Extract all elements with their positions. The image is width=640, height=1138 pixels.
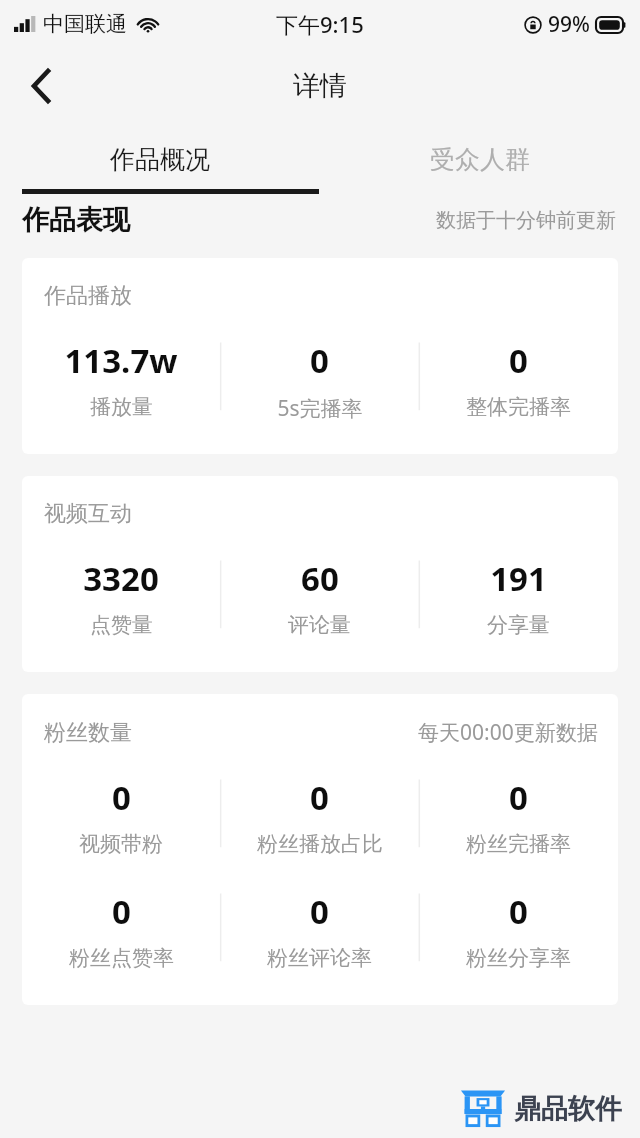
button[interactable]: 受众人群 — [320, 124, 640, 194]
button[interactable]: 作品播放 — [22, 258, 618, 454]
staticText: 作品播放 — [44, 282, 132, 310]
staticText: 3320 — [83, 556, 159, 601]
staticText: 下午9:15 — [276, 9, 364, 39]
staticText: 粉丝评论率 — [267, 945, 372, 971]
button[interactable]: Back — [12, 57, 70, 115]
staticText: 播放量 — [90, 394, 153, 420]
button[interactable]: 粉丝数量 — [22, 694, 618, 1005]
staticText: 0 — [112, 775, 131, 820]
staticText: 分享量 — [487, 612, 550, 638]
staticText: 99% — [548, 10, 590, 39]
staticText: 作品概况 — [110, 144, 210, 175]
staticText: 5s完播率 — [277, 394, 363, 423]
staticText: 点赞量 — [90, 612, 153, 638]
staticText: 60 — [301, 556, 339, 601]
staticText: 粉丝分享率 — [466, 945, 571, 971]
staticText: 视频带粉 — [79, 831, 163, 857]
staticText: 191 — [490, 556, 547, 601]
staticText: 粉丝数量 — [44, 719, 132, 747]
staticText: 每天00:00更新数据 — [418, 718, 598, 747]
button[interactable]: 视频互动 — [22, 476, 618, 672]
staticText: 0 — [509, 775, 528, 820]
staticText: 详情 — [293, 69, 347, 103]
staticText: 0 — [310, 338, 329, 383]
staticText: 整体完播率 — [466, 394, 571, 420]
staticText: 作品表现 — [22, 203, 130, 237]
staticText: 中国联通 — [43, 11, 127, 37]
staticText: 113.7w — [64, 338, 178, 383]
staticText: 0 — [310, 889, 329, 934]
staticText: 粉丝播放占比 — [257, 831, 383, 857]
staticText: 0 — [112, 889, 131, 934]
staticText: 0 — [509, 889, 528, 934]
staticText: 粉丝点赞率 — [69, 945, 174, 971]
staticText: 受众人群 — [430, 144, 530, 175]
staticText: 粉丝完播率 — [466, 831, 571, 857]
staticText: 数据于十分钟前更新 — [436, 208, 616, 233]
staticText: 鼎品软件 — [514, 1092, 622, 1126]
button[interactable]: 作品概况 — [0, 124, 320, 194]
staticText: 0 — [509, 338, 528, 383]
staticText: 0 — [310, 775, 329, 820]
staticText: 视频互动 — [44, 500, 132, 528]
staticText: 评论量 — [288, 612, 351, 638]
